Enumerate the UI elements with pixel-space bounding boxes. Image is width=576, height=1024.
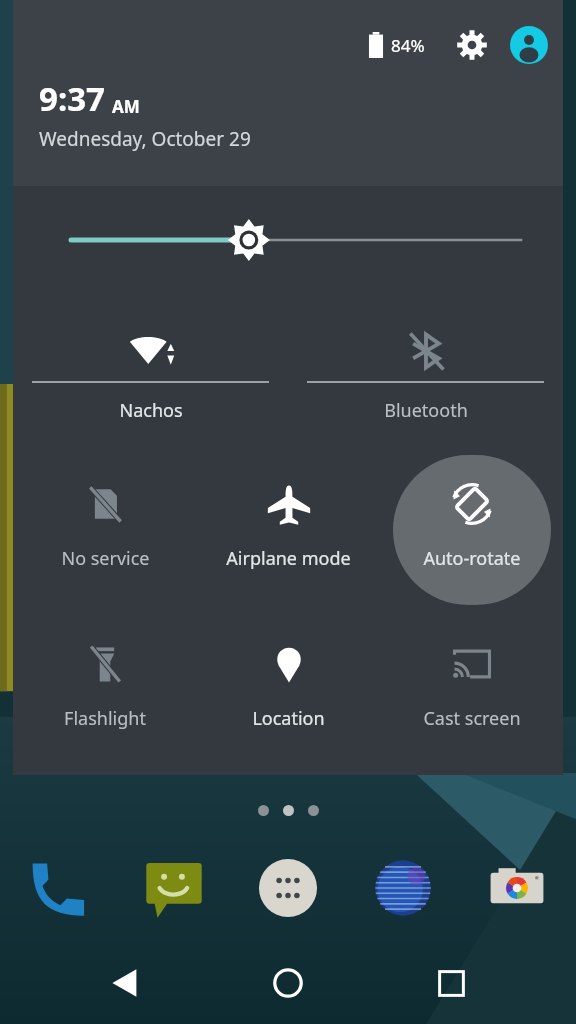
button[interactable]: Brightness — [13, 186, 563, 294]
button[interactable]: Nachos — [13, 322, 288, 434]
staticText: Nachos — [119, 398, 183, 423]
staticText: No service — [61, 546, 150, 571]
button[interactable]: Home — [250, 945, 326, 1021]
button[interactable]: Settings — [451, 24, 493, 66]
staticText: 9:37 — [39, 76, 105, 121]
staticText: Wednesday, October 29 — [39, 126, 251, 152]
button[interactable]: Phone — [22, 851, 96, 925]
button[interactable]: All apps — [251, 851, 325, 925]
button[interactable]: Airplane mode — [197, 462, 380, 612]
button[interactable]: Back — [87, 945, 163, 1021]
button[interactable]: Messaging — [137, 851, 211, 925]
staticText: Flashlight — [64, 706, 146, 731]
button[interactable]: Cast screen — [380, 622, 563, 762]
button[interactable]: Bluetooth — [288, 322, 563, 434]
staticText: 84% — [391, 34, 425, 57]
staticText: AM — [112, 95, 140, 118]
button[interactable]: Flashlight — [13, 622, 197, 762]
button[interactable]: Browser — [366, 851, 440, 925]
staticText: Auto-rotate — [423, 546, 521, 571]
button[interactable]: Recent apps — [413, 945, 489, 1021]
button[interactable]: Auto-rotate — [380, 462, 563, 612]
button[interactable]: No service — [13, 462, 197, 612]
button[interactable]: Location — [197, 622, 380, 762]
staticText: Airplane mode — [226, 546, 351, 571]
staticText: Cast screen — [423, 706, 521, 731]
button[interactable]: User profile — [509, 25, 549, 65]
staticText: Location — [252, 706, 325, 731]
staticText: Bluetooth — [384, 398, 468, 423]
button[interactable]: Camera — [480, 851, 554, 925]
